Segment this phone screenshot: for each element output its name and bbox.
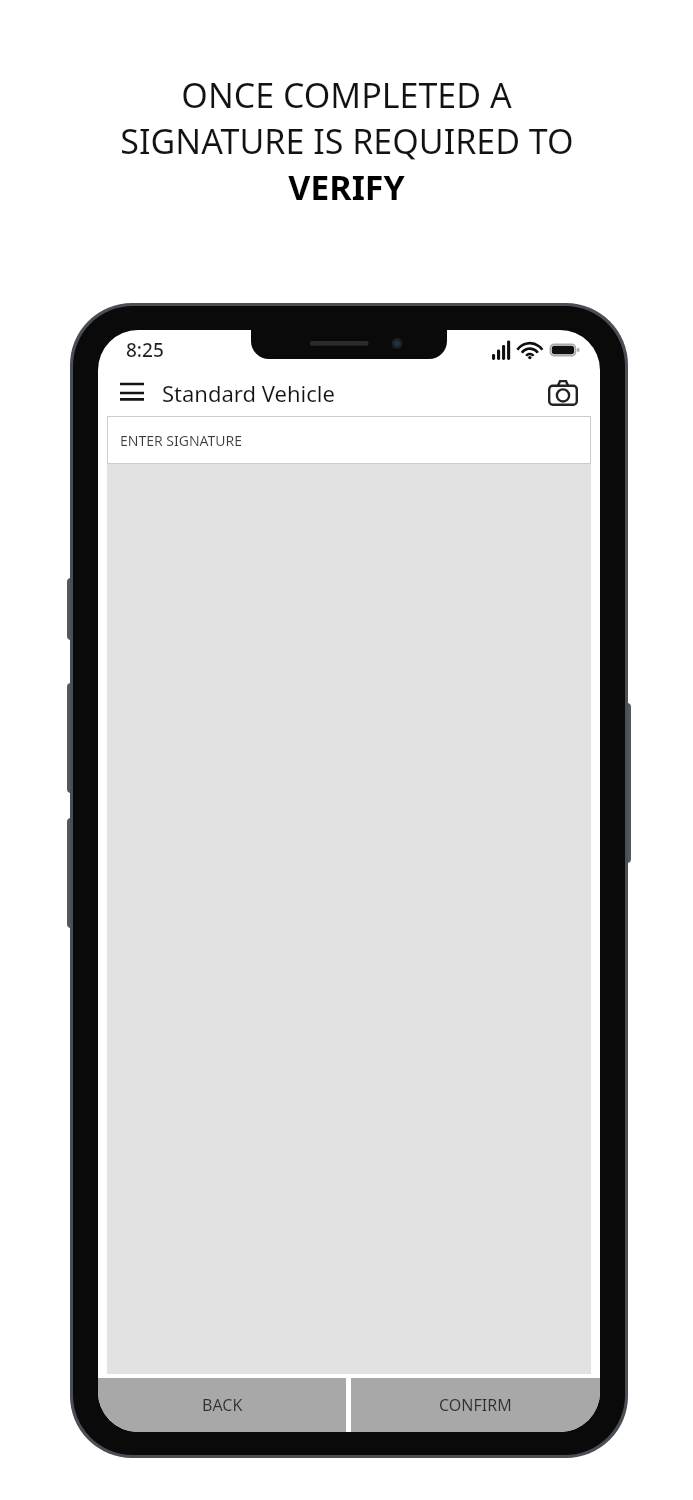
staticText: 8:25 (126, 337, 164, 363)
staticText: CONFIRM (439, 1394, 512, 1416)
button[interactable]: ENTER SIGNATURE (107, 416, 591, 464)
button[interactable]: CONFIRM (351, 1378, 600, 1432)
staticText: ONCE COMPLETED A (181, 72, 512, 118)
staticText: ENTER SIGNATURE (120, 431, 243, 450)
button[interactable]: Take photo (542, 372, 584, 414)
staticText: VERIFY (288, 164, 405, 210)
staticText: BACK (202, 1394, 243, 1416)
button[interactable]: BACK (98, 1378, 346, 1432)
staticText: Standard Vehicle (162, 378, 335, 408)
button[interactable]: Open navigation menu (112, 373, 152, 413)
staticText: SIGNATURE IS REQUIRED TO (120, 118, 574, 164)
